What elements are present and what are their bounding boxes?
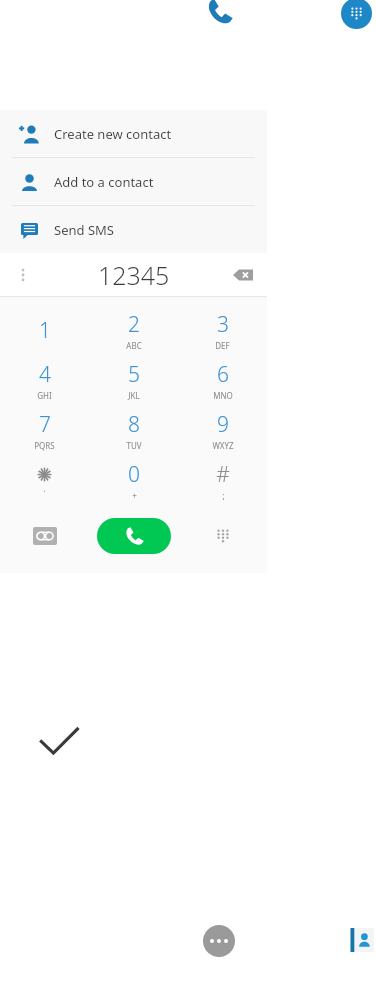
staticText: 7 [39, 410, 51, 439]
staticText: 8 [128, 410, 140, 439]
button[interactable]: 3 [178, 305, 267, 355]
staticText: 0 [128, 460, 140, 489]
button[interactable]: Create new contact [0, 110, 267, 157]
staticText: 4 [39, 360, 51, 389]
button[interactable]: Voicemail [33, 527, 57, 545]
button[interactable]: Call [97, 518, 171, 554]
staticText: 5 [128, 360, 140, 389]
button[interactable]: More options [8, 260, 38, 290]
button[interactable]: # [178, 455, 267, 505]
staticText: 3 [217, 310, 229, 339]
staticText: 1 [39, 316, 51, 345]
staticText: DEF [215, 340, 230, 351]
staticText: TUV [126, 440, 142, 451]
button[interactable]: 1 [0, 305, 89, 355]
button[interactable]: Contacts [349, 927, 375, 953]
staticText: WXYZ [212, 440, 234, 451]
button[interactable]: Hide dialpad [207, 520, 239, 552]
staticText: 12345 [98, 258, 170, 292]
button[interactable]: Dialpad [341, 0, 372, 29]
staticText: PQRS [34, 440, 55, 451]
staticText: 2 [128, 310, 140, 339]
button[interactable]: Backspace [227, 259, 259, 291]
staticText: Create new contact [54, 125, 172, 143]
button[interactable]: 9 [178, 405, 267, 455]
staticText: 9 [217, 410, 229, 439]
staticText: . [43, 483, 46, 494]
button[interactable]: 0 [89, 455, 178, 505]
button[interactable]: 8 [89, 405, 178, 455]
staticText: # [216, 460, 230, 489]
staticText: ; [222, 490, 225, 501]
staticText: JKL [128, 390, 140, 401]
staticText: 6 [217, 360, 229, 389]
staticText: Send SMS [54, 221, 114, 239]
button[interactable]: . [0, 455, 89, 505]
staticText: GHI [37, 390, 52, 401]
staticText: + [132, 490, 137, 501]
button[interactable]: Apps [203, 925, 235, 957]
button[interactable]: 2 [89, 305, 178, 355]
button[interactable]: Add to a contact [0, 158, 267, 205]
button[interactable]: 6 [178, 355, 267, 405]
staticText: MNO [213, 390, 233, 401]
button[interactable]: 7 [0, 405, 89, 455]
staticText: ABC [126, 340, 142, 351]
button[interactable]: Done [36, 718, 82, 764]
button[interactable]: 5 [89, 355, 178, 405]
staticText: Add to a contact [54, 173, 154, 191]
button[interactable]: Send SMS [0, 206, 267, 253]
button[interactable]: Call [200, 0, 240, 32]
button[interactable]: 4 [0, 355, 89, 405]
